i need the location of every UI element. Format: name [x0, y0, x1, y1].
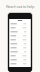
button[interactable]	[9, 62, 31, 66]
button[interactable]	[9, 26, 31, 30]
button[interactable]	[9, 34, 31, 38]
button[interactable]	[9, 50, 31, 54]
button[interactable]	[9, 38, 31, 42]
staticText: Reach out to help	[6, 4, 34, 9]
button[interactable]	[9, 46, 31, 50]
button[interactable]	[9, 30, 31, 34]
button[interactable]	[9, 22, 31, 26]
button[interactable]	[9, 42, 31, 46]
button[interactable]	[9, 58, 31, 62]
button[interactable]	[9, 54, 31, 58]
